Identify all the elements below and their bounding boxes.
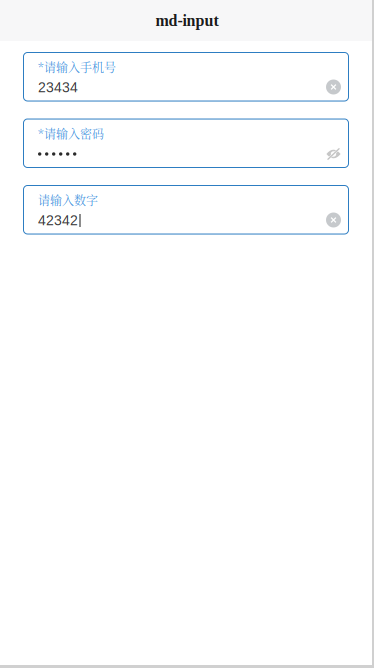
button[interactable]: 请输入数字 [23, 185, 349, 234]
button[interactable]: Show password [326, 147, 341, 161]
button[interactable]: Clear phone number [326, 79, 341, 94]
staticText: 42342 [38, 213, 78, 228]
staticText: *请输入手机号 [38, 58, 116, 76]
staticText: md-input [155, 12, 218, 29]
button[interactable]: Clear number [326, 212, 341, 227]
staticText: 请输入数字 [38, 191, 98, 209]
staticText: 23434 [38, 80, 78, 95]
button[interactable]: *请输入手机号 [23, 52, 349, 101]
button[interactable]: *请输入密码 [23, 118, 349, 168]
staticText: *请输入密码 [38, 125, 104, 142]
